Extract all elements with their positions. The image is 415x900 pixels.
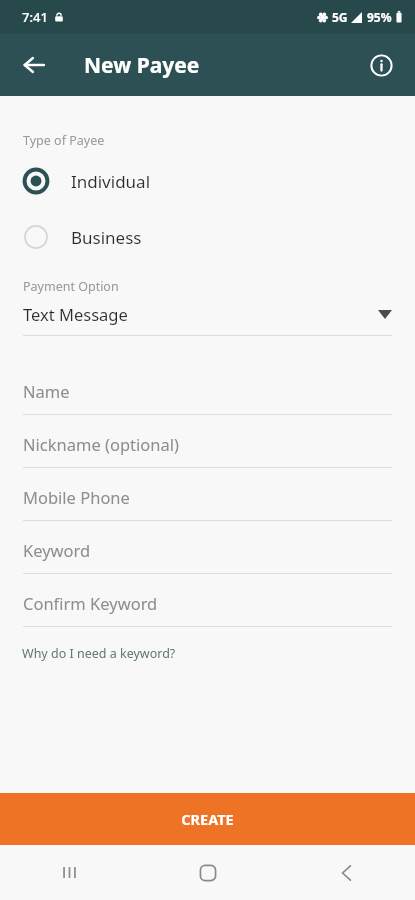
staticText: Individual [71, 170, 151, 193]
button[interactable]: Info [359, 43, 403, 87]
staticText: CREATE [181, 809, 234, 829]
staticText: New Payee [84, 51, 200, 80]
button[interactable]: Back [12, 43, 56, 87]
staticText: Business [71, 226, 142, 249]
button[interactable]: Back [277, 845, 415, 900]
staticText: Text Message [23, 303, 378, 325]
button[interactable]: Nickname (optional) [0, 415, 415, 468]
button[interactable]: Name [0, 362, 415, 415]
staticText: 95% [367, 9, 392, 25]
button[interactable]: Confirm Keyword [0, 574, 415, 627]
button[interactable]: Business [0, 218, 415, 256]
staticText: Why do I need a keyword? [22, 645, 176, 662]
staticText: 5G [332, 9, 348, 25]
button[interactable]: Mobile Phone [0, 468, 415, 521]
staticText: Keyword [23, 539, 91, 561]
staticText: Nickname (optional) [23, 433, 179, 455]
button[interactable]: Individual [0, 162, 415, 200]
button[interactable]: Home [139, 845, 277, 900]
staticText: Confirm Keyword [23, 592, 158, 614]
button[interactable]: Recent apps [0, 845, 139, 900]
staticText: Mobile Phone [23, 486, 130, 508]
staticText: Type of Payee [23, 132, 105, 149]
staticText: Name [23, 380, 70, 402]
button[interactable]: CREATE [0, 793, 415, 845]
button[interactable]: Why do I need a keyword? [0, 643, 188, 668]
button[interactable]: Payment Option [0, 278, 415, 336]
button[interactable]: Keyword [0, 521, 415, 574]
staticText: Payment Option [23, 278, 119, 295]
staticText: 7:41 [22, 8, 48, 26]
